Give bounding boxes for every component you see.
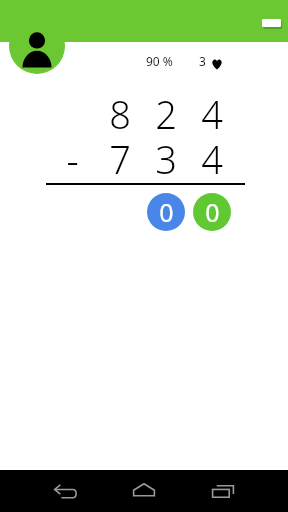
staticText: 90 % xyxy=(146,53,173,69)
staticText: 0 xyxy=(205,195,220,229)
staticText: 7 xyxy=(109,133,131,183)
staticText: - xyxy=(66,133,79,183)
button[interactable]: Profile xyxy=(9,18,65,74)
staticText: 2 xyxy=(155,88,177,138)
button[interactable]: Back xyxy=(38,474,92,508)
staticText: 3 xyxy=(155,133,177,183)
button[interactable]: 0 xyxy=(193,193,231,231)
button[interactable]: Menu xyxy=(262,19,281,27)
staticText: 4 xyxy=(201,133,223,183)
staticText: 8 xyxy=(109,88,131,138)
button[interactable]: 0 xyxy=(147,193,185,231)
staticText: 3 xyxy=(199,53,206,69)
staticText: 4 xyxy=(201,88,223,138)
button[interactable]: Recent apps xyxy=(196,474,250,508)
button[interactable]: Home xyxy=(117,474,171,508)
staticText: 0 xyxy=(159,195,174,229)
